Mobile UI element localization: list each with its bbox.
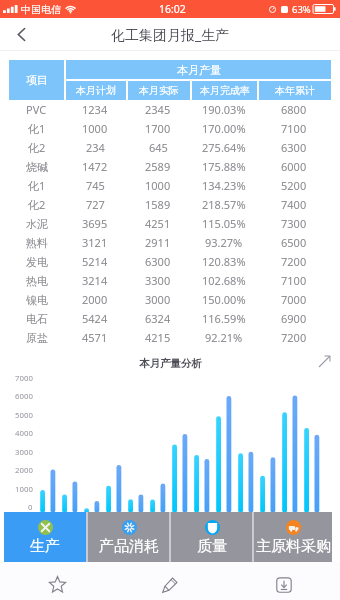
staticText: 7200 <box>281 254 307 269</box>
staticText: 134.23% <box>202 178 246 193</box>
button[interactable]: 生产 <box>4 512 86 562</box>
staticText: 7000 <box>15 373 33 384</box>
button[interactable]: Download <box>227 569 340 600</box>
staticText: 本月计划 <box>76 84 116 97</box>
staticText: 1000 <box>145 178 171 193</box>
staticText: 5200 <box>281 178 307 193</box>
staticText: 5424 <box>82 311 108 326</box>
staticText: 3695 <box>82 216 108 231</box>
staticText: 5214 <box>82 254 108 269</box>
button[interactable]: 化2 <box>9 138 331 157</box>
button[interactable]: 原盐 <box>9 328 331 347</box>
staticText: 275.64% <box>202 140 246 155</box>
staticText: 主原料采购 <box>256 537 331 556</box>
button[interactable]: 熟料 <box>9 233 331 252</box>
staticText: 产品消耗 <box>99 537 159 556</box>
button[interactable]: 镍电 <box>9 290 331 309</box>
button[interactable]: PVC <box>9 100 331 119</box>
staticText: 6324 <box>145 311 171 326</box>
button[interactable]: 电石 <box>9 309 331 328</box>
staticText: 化2 <box>28 197 46 212</box>
staticText: PVC <box>26 102 47 117</box>
staticText: 7200 <box>281 330 307 345</box>
staticText: 218.57% <box>202 197 246 212</box>
staticText: 3121 <box>82 235 108 250</box>
staticText: 116.59% <box>202 311 246 326</box>
staticText: 63% <box>292 3 311 16</box>
staticText: 7300 <box>281 216 307 231</box>
button[interactable]: 质量 <box>171 512 252 562</box>
button[interactable]: Favorite <box>0 569 114 600</box>
staticText: 原盐 <box>26 331 48 345</box>
button[interactable]: 热电 <box>9 271 331 290</box>
staticText: 发电 <box>26 255 48 269</box>
staticText: 烧碱 <box>26 160 48 174</box>
staticText: 6300 <box>281 140 307 155</box>
staticText: 6300 <box>145 254 171 269</box>
staticText: 2911 <box>145 235 171 250</box>
button[interactable]: 化1 <box>9 119 331 138</box>
staticText: 190.03% <box>202 102 246 117</box>
staticText: 4215 <box>145 330 171 345</box>
staticText: 生产 <box>30 537 60 556</box>
button[interactable]: Edit <box>114 569 227 600</box>
staticText: 120.83% <box>202 254 246 269</box>
staticText: 2345 <box>145 102 171 117</box>
staticText: 175.88% <box>202 159 246 174</box>
staticText: 727 <box>86 197 105 212</box>
button[interactable]: Expand chart <box>318 355 331 368</box>
staticText: 化1 <box>28 121 46 136</box>
button[interactable]: 产品消耗 <box>88 512 169 562</box>
button[interactable]: 水泥 <box>9 214 331 233</box>
button[interactable]: 化2 <box>9 195 331 214</box>
staticText: 4251 <box>145 216 171 231</box>
staticText: 2000 <box>82 292 108 307</box>
staticText: 7100 <box>281 273 307 288</box>
staticText: 1700 <box>145 121 171 136</box>
staticText: 化1 <box>28 178 46 193</box>
staticText: 102.68% <box>202 273 246 288</box>
staticText: 3300 <box>145 273 171 288</box>
staticText: 电石 <box>26 312 48 326</box>
staticText: 1000 <box>15 484 33 495</box>
staticText: 熟料 <box>26 236 48 250</box>
staticText: 3000 <box>145 292 171 307</box>
staticText: 水泥 <box>26 217 48 231</box>
staticText: 92.21% <box>205 330 243 345</box>
staticText: 3214 <box>82 273 108 288</box>
staticText: 项目 <box>26 73 48 87</box>
staticText: 170.00% <box>202 121 246 136</box>
staticText: 本年累计 <box>275 84 315 97</box>
staticText: 115.05% <box>202 216 246 231</box>
staticText: 6900 <box>281 311 307 326</box>
staticText: 热电 <box>26 274 48 288</box>
staticText: 中国电信 <box>21 3 61 16</box>
staticText: 7100 <box>281 121 307 136</box>
staticText: 1000 <box>82 121 108 136</box>
staticText: 质量 <box>197 537 227 556</box>
staticText: 4571 <box>82 330 108 345</box>
staticText: 1589 <box>145 197 171 212</box>
staticText: 0 <box>28 502 33 513</box>
button[interactable]: 主原料采购 <box>254 512 332 562</box>
staticText: 本月完成率 <box>200 84 250 97</box>
staticText: 2589 <box>145 159 171 174</box>
staticText: 1472 <box>82 159 108 174</box>
staticText: 化工集团月报_生产 <box>111 25 230 44</box>
staticText: 镍电 <box>26 293 48 307</box>
button[interactable]: 发电 <box>9 252 331 271</box>
staticText: 1234 <box>82 102 108 117</box>
staticText: 本月产量 <box>177 63 221 77</box>
staticText: 7400 <box>281 197 307 212</box>
button[interactable]: Back <box>0 18 42 50</box>
staticText: 93.27% <box>205 235 243 250</box>
button[interactable]: 化1 <box>9 176 331 195</box>
staticText: 6800 <box>281 102 307 117</box>
staticText: 6000 <box>281 159 307 174</box>
staticText: 化2 <box>28 140 46 155</box>
staticText: 2000 <box>15 465 33 476</box>
staticText: 645 <box>149 140 168 155</box>
staticText: 150.00% <box>202 292 246 307</box>
button[interactable]: 烧碱 <box>9 157 331 176</box>
staticText: 本月产量分析 <box>139 357 202 370</box>
